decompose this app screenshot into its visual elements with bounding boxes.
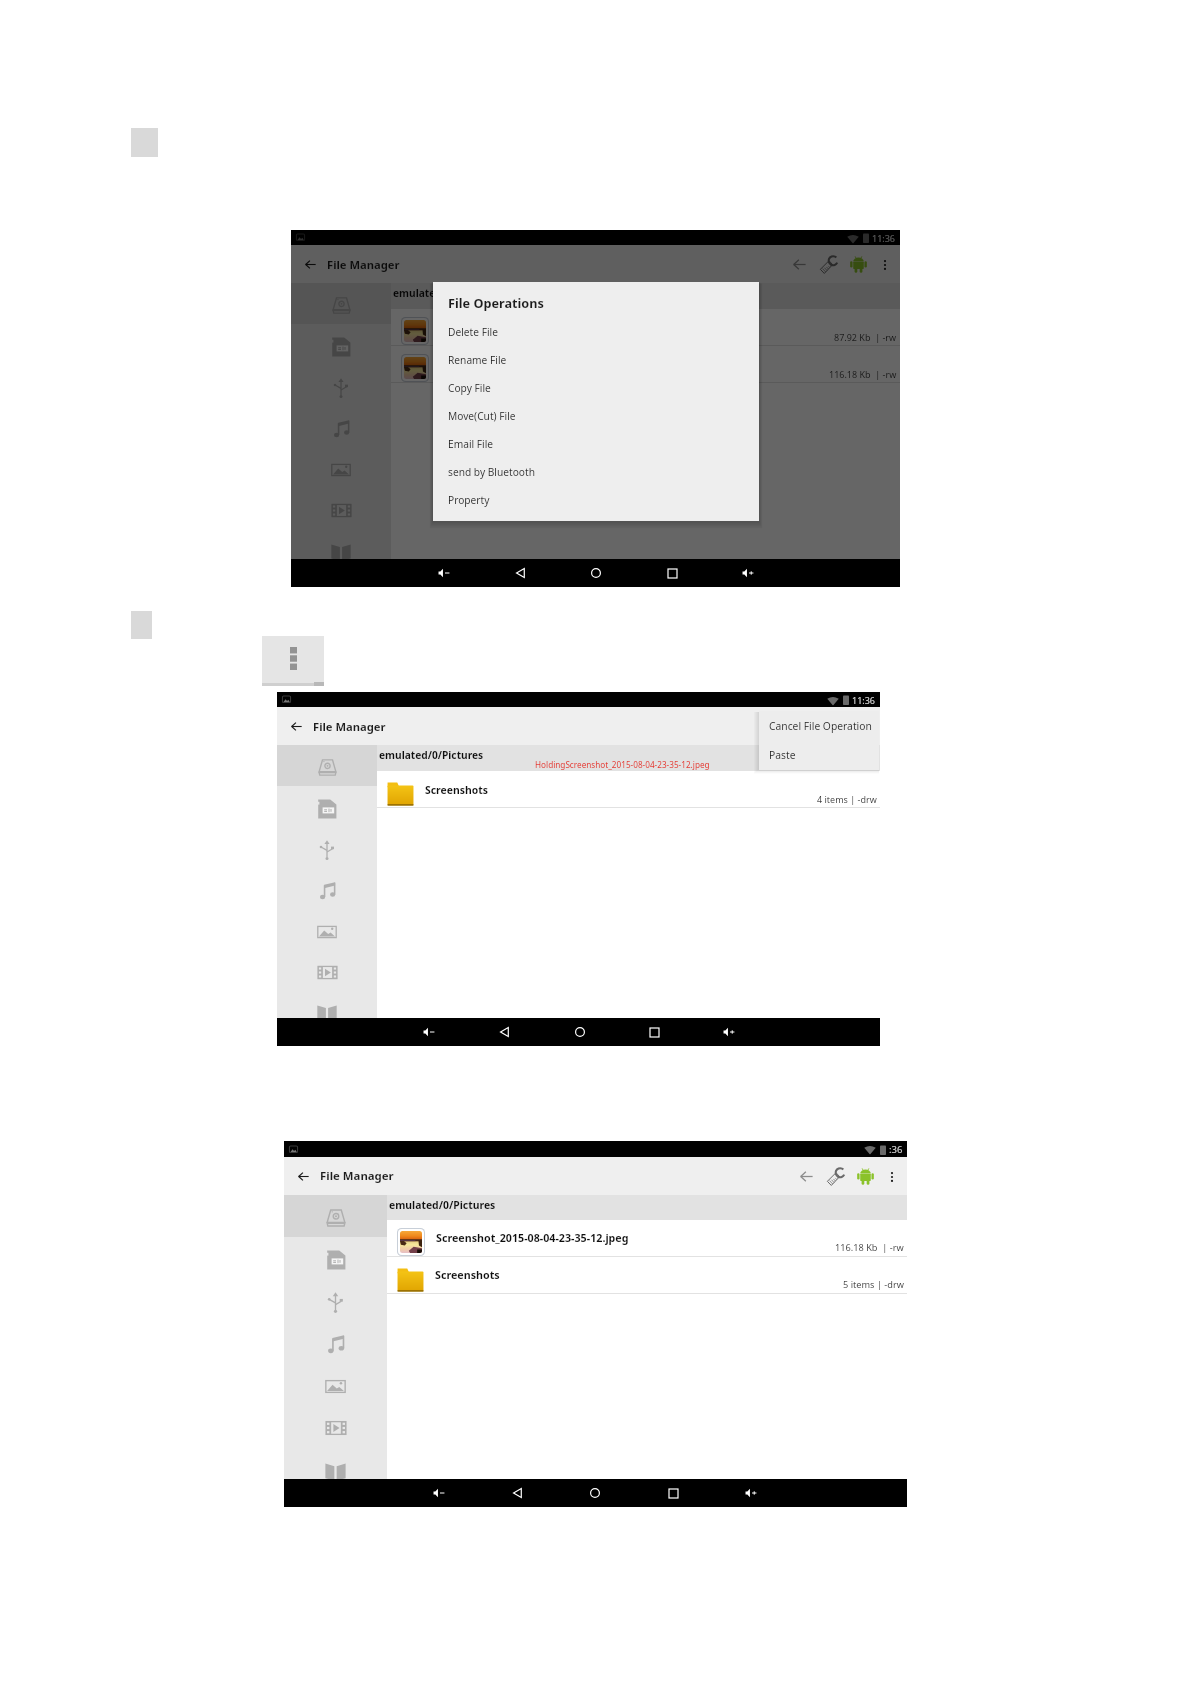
button[interactable]: Music [291,406,391,447]
button[interactable]: Volume up [710,559,786,587]
button[interactable]: Screenshot_2015-08-04-23-35-12.jpeg [391,346,900,383]
button[interactable]: Back [478,1479,556,1507]
button[interactable]: Internal storage [284,1195,387,1237]
button[interactable]: Volume down [391,1018,467,1046]
staticText: Screenshot_2015-08-04-23-35-12.jpeg [440,358,628,372]
button[interactable]: Home [558,559,634,587]
staticText: HoldingScreenshot_2015-08-04-23-35-12.jp… [535,759,710,770]
button[interactable]: Volume up [712,1479,790,1507]
button[interactable]: Volume down [400,1479,478,1507]
staticText: Screenshot_2015-08-04-23-18-39.jpeg [440,321,628,335]
staticText: :36 [889,1143,903,1156]
staticText: 116.18 Kb | -rw [829,368,897,380]
button[interactable]: SD card [277,786,377,827]
button[interactable]: Screenshots [377,771,880,808]
staticText: File Manager [313,719,386,734]
staticText: Screenshot_2015-08-04-23-35-12.jpeg [436,1231,629,1246]
button[interactable]: USB storage [284,1279,387,1321]
button[interactable]: Pictures [277,909,377,950]
button[interactable]: Documents [277,991,377,1018]
button[interactable]: Up one level [786,251,813,278]
staticText: Copy File [448,381,491,395]
button[interactable]: More options [873,253,896,276]
button[interactable]: Rename File [433,346,759,374]
button[interactable]: Home [542,1018,617,1046]
button[interactable]: Videos [277,950,377,991]
staticText: emulated/0/Pictures [393,286,498,300]
button[interactable]: Documents [284,1447,387,1479]
button[interactable]: Documents [291,529,391,559]
button[interactable]: Pictures [284,1363,387,1405]
button[interactable]: Property [433,486,759,514]
staticText: File Manager [320,1168,394,1184]
staticText: File Operations [448,294,544,311]
staticText: emulated/0/Pictures [379,748,484,762]
staticText: 5 items | -drw [843,1278,904,1291]
button[interactable]: Recent apps [634,559,710,587]
button[interactable]: Recent apps [617,1018,692,1046]
button[interactable]: Music [277,868,377,909]
button[interactable]: Screenshot_2015-08-04-23-18-39.jpeg [391,309,900,346]
staticText: Delete File [448,325,498,339]
staticText: 87.92 Kb | -rw [834,331,897,343]
button[interactable]: Email File [433,430,759,458]
button[interactable]: Back [290,1163,317,1190]
button[interactable]: Music [284,1321,387,1363]
button[interactable]: Back [467,1018,542,1046]
button[interactable]: Settings [815,251,842,278]
button[interactable]: Back [297,251,324,278]
button[interactable]: Delete File [433,318,759,346]
button[interactable]: Copy File [433,374,759,402]
button[interactable]: Videos [291,488,391,529]
button[interactable]: Volume down [406,559,482,587]
button[interactable]: Paste [759,741,879,769]
button[interactable]: USB storage [277,827,377,868]
button[interactable]: Back [283,713,310,740]
button[interactable]: Cancel File Operation [759,711,879,741]
staticText: Cancel File Operation [769,719,872,733]
button[interactable]: More options [880,1165,903,1188]
button[interactable]: Move(Cut) File [433,402,759,430]
button[interactable]: Recent apps [634,1479,712,1507]
staticText: Move(Cut) File [448,409,516,423]
staticText: 11:36 [872,232,896,244]
button[interactable]: Applications [845,251,872,278]
button[interactable]: Up one level [793,1163,820,1190]
staticText: Rename File [448,353,507,367]
button[interactable]: Applications [852,1163,879,1190]
button[interactable]: Screenshot_2015-08-04-23-35-12.jpeg [387,1220,907,1257]
button[interactable]: Settings [822,1163,849,1190]
button[interactable]: Pictures [291,447,391,488]
button[interactable]: Home [556,1479,634,1507]
button[interactable]: SD card [291,324,391,365]
staticText: emulated/0/Pictures [389,1198,496,1212]
button[interactable]: send by Bluetooth [433,458,759,486]
staticText: Property [448,493,490,507]
staticText: Screenshots [435,1268,500,1283]
staticText: Screenshots [425,783,488,797]
button[interactable]: Volume up [692,1018,767,1046]
staticText: 11:36 [852,694,876,706]
staticText: send by Bluetooth [448,465,536,479]
staticText: Paste [769,748,796,762]
button[interactable]: Screenshots [387,1257,907,1294]
button[interactable]: Videos [284,1405,387,1447]
staticText: 4 items | -drw [817,793,877,805]
button[interactable]: Internal storage [277,745,377,786]
staticText: File Manager [327,257,400,272]
staticText: 116.18 Kb | -rw [835,1241,904,1254]
button[interactable]: SD card [284,1237,387,1279]
staticText: Email File [448,437,494,451]
button[interactable]: Back [482,559,558,587]
